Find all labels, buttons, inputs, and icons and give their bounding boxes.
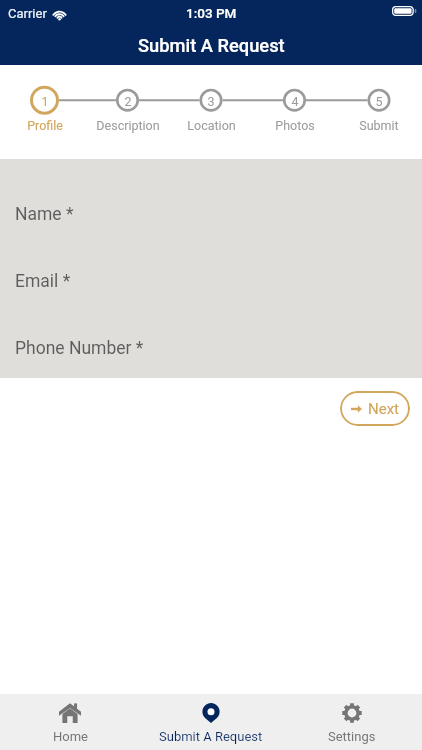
button[interactable]: Home [0, 694, 140, 750]
button[interactable]: Phone Number * [0, 326, 422, 370]
staticText: Phone Number * [15, 338, 144, 359]
button[interactable]: Settings [281, 694, 422, 750]
button[interactable]: Email * [0, 259, 422, 303]
button[interactable]: 5 [337, 65, 421, 159]
button[interactable]: Submit A Request [140, 694, 281, 750]
staticText: 5 [375, 94, 383, 109]
staticText: Name * [15, 204, 74, 225]
staticText: Submit A Request [159, 729, 263, 744]
staticText: 1 [41, 94, 49, 109]
staticText: Settings [328, 729, 376, 744]
staticText: Submit A Request [138, 35, 285, 56]
staticText: 3 [207, 94, 215, 109]
staticText: Submit [359, 118, 399, 133]
button[interactable]: 2 [86, 65, 170, 159]
staticText: Profile [27, 118, 63, 133]
button[interactable]: Name * [0, 192, 422, 236]
staticText: Home [53, 729, 88, 744]
staticText: Next [368, 400, 400, 418]
staticText: 4 [291, 94, 299, 109]
button[interactable]: 4 [253, 65, 337, 159]
staticText: Carrier [8, 6, 47, 21]
button[interactable]: 3 [169, 65, 253, 159]
staticText: Email * [15, 271, 71, 292]
button[interactable]: 1 [3, 65, 87, 159]
staticText: 2 [124, 94, 132, 109]
staticText: Location [187, 118, 236, 133]
staticText: 1:03 PM [186, 5, 237, 21]
button[interactable]: Next [340, 391, 410, 426]
staticText: Photos [275, 118, 315, 133]
staticText: Description [96, 118, 160, 133]
